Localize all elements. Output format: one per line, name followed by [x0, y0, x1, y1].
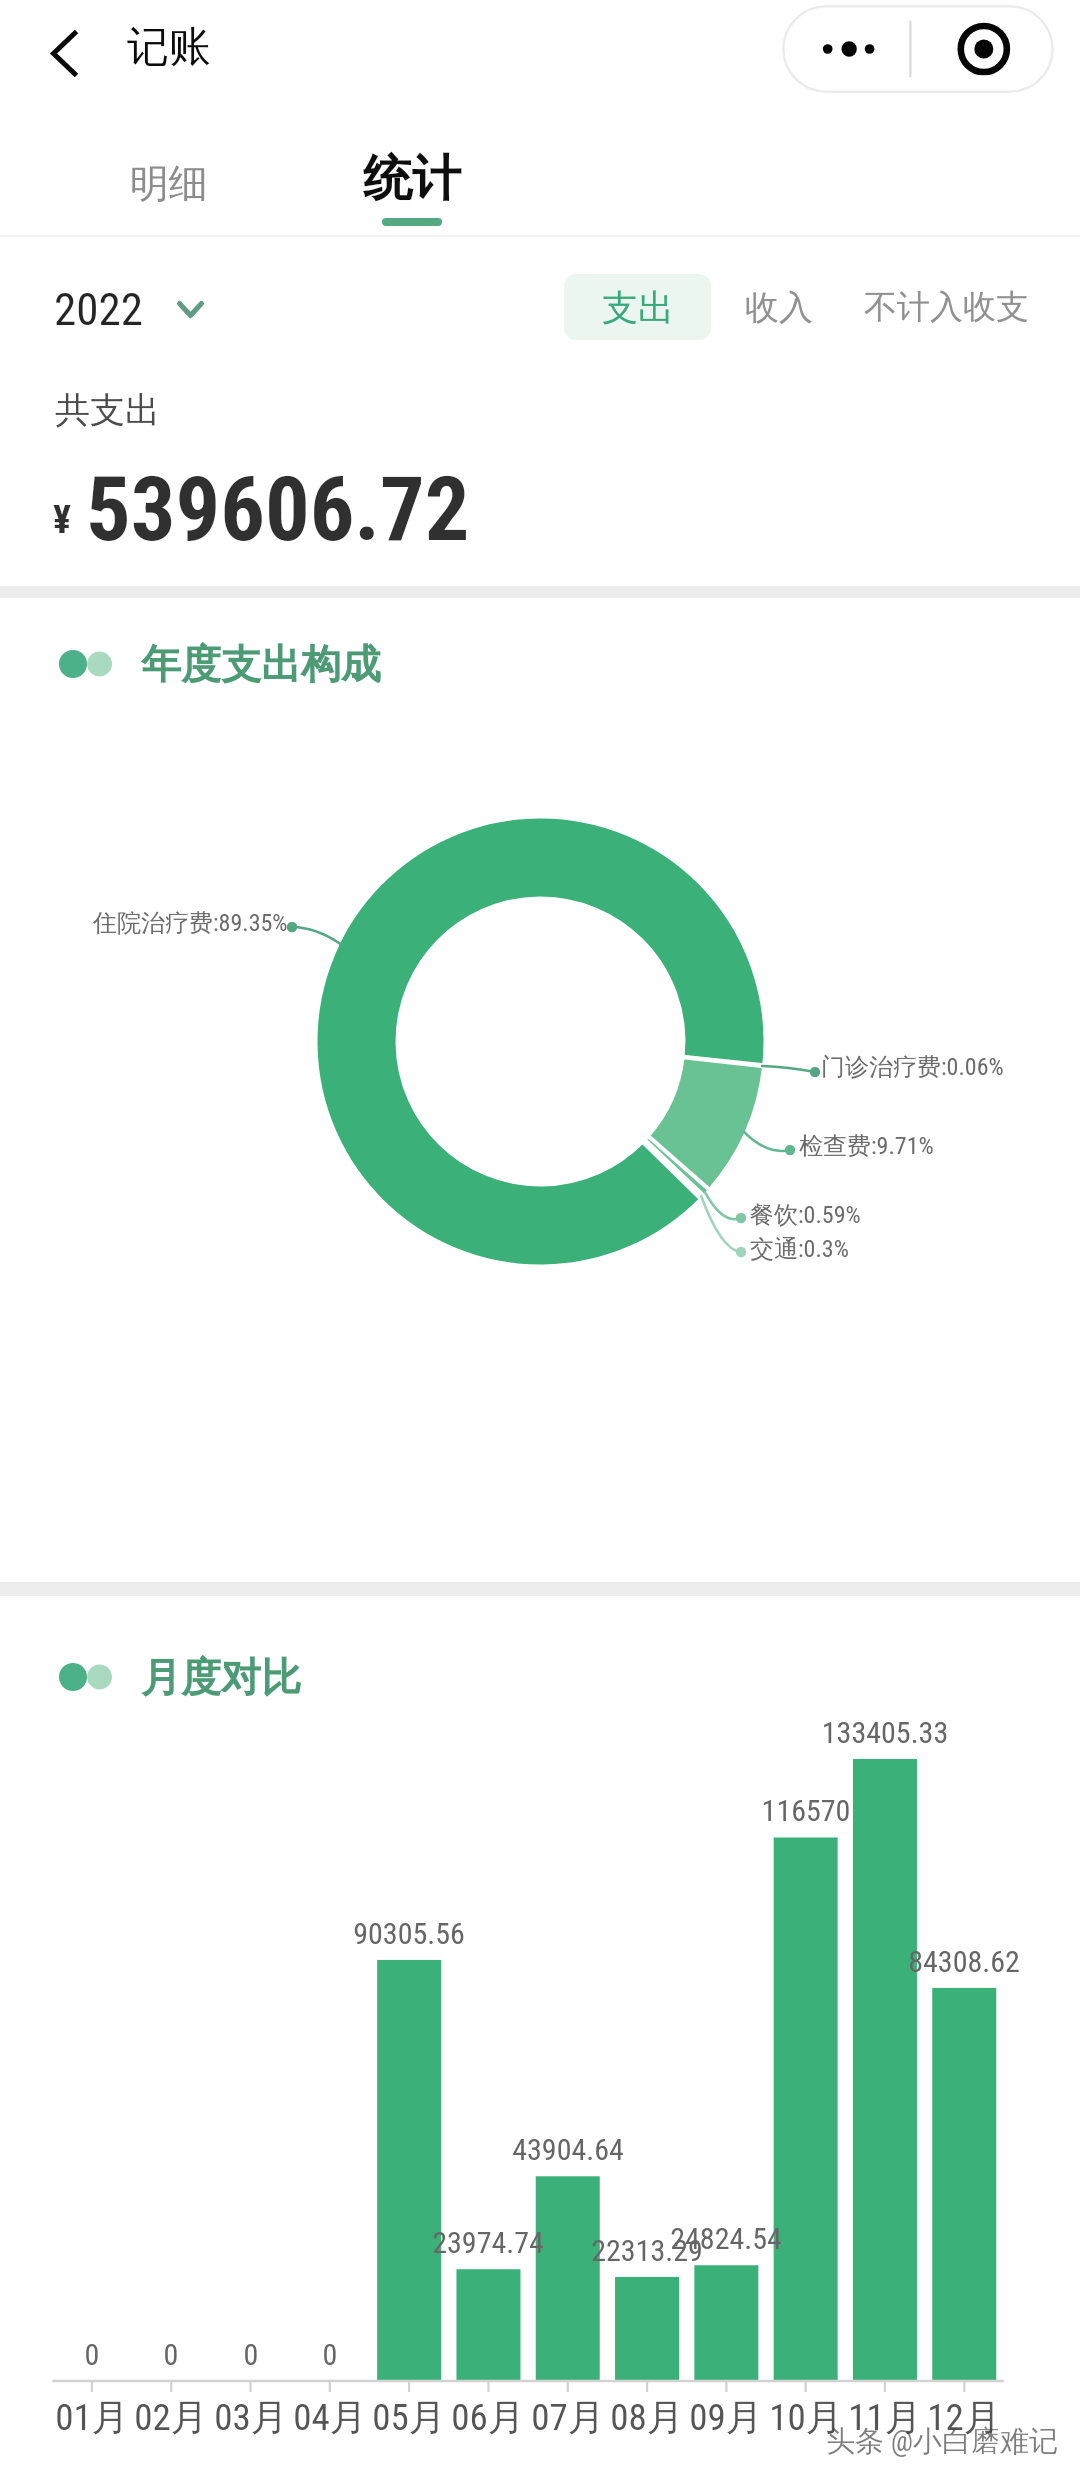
- staticText: 住院治疗费:89.35%: [93, 908, 288, 938]
- staticText: 09月: [636, 2394, 816, 2441]
- staticText: 0: [101, 2337, 401, 2372]
- staticText: 06月: [398, 2394, 578, 2441]
- button[interactable]: 2022: [54, 278, 204, 340]
- staticText: 年度支出构成: [141, 639, 381, 689]
- staticText: 门诊治疗费:0.06%: [821, 1052, 1004, 1082]
- staticText: 支出: [602, 285, 674, 330]
- staticText: 04月: [240, 2394, 420, 2441]
- staticText: 133405.33: [735, 1715, 1035, 1750]
- staticText: 05月: [319, 2394, 499, 2441]
- staticText: 23974.74: [338, 2225, 638, 2260]
- staticText: 84308.62: [814, 1944, 1080, 1979]
- staticText: 10月: [716, 2394, 896, 2441]
- button[interactable]: Back: [16, 5, 112, 101]
- staticText: 检查费:9.71%: [799, 1131, 934, 1161]
- staticText: 收入: [745, 286, 813, 329]
- staticText: 90305.56: [259, 1916, 559, 1951]
- staticText: 头条 @小白磨难记: [826, 2423, 1058, 2460]
- staticText: 月度对比: [141, 1652, 301, 1702]
- button[interactable]: 统计: [340, 148, 484, 244]
- staticText: ¥: [53, 498, 72, 543]
- staticText: 0: [21, 2337, 321, 2372]
- button[interactable]: 不计入收支: [863, 274, 1029, 340]
- staticText: 22313.29: [497, 2233, 797, 2268]
- button[interactable]: 支出: [564, 274, 711, 340]
- staticText: 2022: [54, 283, 143, 336]
- staticText: 43904.64: [418, 2132, 718, 2167]
- staticText: 0: [0, 2337, 242, 2372]
- staticText: 116570: [656, 1793, 956, 1828]
- staticText: 24824.54: [576, 2221, 876, 2256]
- staticText: 03月: [161, 2394, 341, 2441]
- staticText: 08月: [557, 2394, 737, 2441]
- staticText: 12月: [874, 2394, 1054, 2441]
- staticText: 07月: [478, 2394, 658, 2441]
- staticText: 记账: [127, 21, 211, 74]
- staticText: 交通:0.3%: [750, 1234, 849, 1264]
- button[interactable]: 明细: [98, 143, 240, 223]
- staticText: 11月: [795, 2394, 975, 2441]
- staticText: 01月: [2, 2394, 182, 2441]
- staticText: 02月: [81, 2394, 261, 2441]
- button[interactable]: 收入: [740, 274, 818, 340]
- staticText: 539606.72: [86, 458, 470, 562]
- staticText: 统计: [363, 148, 461, 210]
- staticText: 共支出: [55, 388, 160, 432]
- staticText: 餐饮:0.59%: [750, 1200, 861, 1230]
- staticText: 不计入收支: [864, 286, 1029, 328]
- staticText: 0: [180, 2337, 480, 2372]
- button[interactable]: More options: [782, 5, 1054, 93]
- staticText: 明细: [130, 159, 208, 208]
